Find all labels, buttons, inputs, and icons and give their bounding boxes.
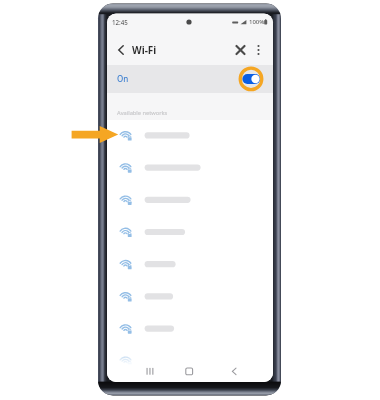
staticText: Wi-Fi: [132, 43, 157, 57]
staticText: Available networks: [117, 109, 168, 117]
staticText: 12:45: [112, 18, 128, 26]
staticText: 100%: [249, 18, 265, 26]
staticText: On: [117, 73, 129, 84]
button[interactable]: Wi-Fi: [132, 43, 157, 57]
